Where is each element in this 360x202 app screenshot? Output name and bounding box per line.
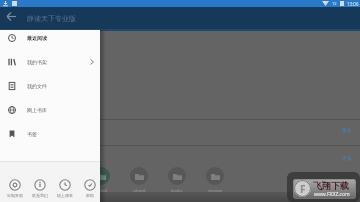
staticText: 更多: [342, 127, 352, 133]
staticText: 书签: [27, 131, 37, 137]
button[interactable]: sdcard: [130, 167, 148, 193]
staticText: storage: [208, 188, 223, 193]
staticText: 最近阅读: [27, 35, 47, 41]
button[interactable]: 定制界面: [4, 179, 26, 198]
staticText: www.FXXZ.com: [314, 191, 350, 198]
button[interactable]: 联系我们: [29, 179, 51, 198]
staticText: 网上书库: [27, 107, 47, 113]
staticText: sdcard: [133, 188, 146, 193]
staticText: books: [171, 188, 183, 193]
button[interactable]: 网上书库: [0, 98, 100, 122]
staticText: 13:06: [347, 1, 359, 7]
staticText: 帮助: [86, 193, 94, 198]
staticText: F: [300, 182, 306, 196]
staticText: 飞翔下载: [313, 180, 349, 191]
button[interactable]: 线上课堂: [54, 179, 76, 198]
staticText: 12: [332, 1, 337, 6]
staticText: 我的文件: [27, 83, 47, 89]
staticText: 静读天下专业版: [27, 14, 76, 23]
button[interactable]: 帮助: [79, 179, 101, 198]
button[interactable]: [0, 5, 22, 27]
button[interactable]: 更多: [338, 125, 356, 135]
staticText: 更多: [342, 155, 352, 161]
staticText: 线上课堂: [57, 193, 73, 198]
button[interactable]: 我的书架: [0, 50, 100, 74]
staticText: 定制界面: [7, 193, 23, 198]
button[interactable]: storage: [206, 167, 224, 193]
button[interactable]: 更多: [338, 153, 356, 163]
staticText: 联系我们: [32, 193, 48, 198]
button[interactable]: books: [168, 167, 186, 193]
button[interactable]: 最近阅读: [0, 26, 100, 50]
staticText: ncard: [96, 188, 107, 193]
button[interactable]: ncard: [92, 167, 110, 193]
staticText: 我的书架: [27, 59, 47, 65]
button[interactable]: 书签: [0, 122, 100, 146]
button[interactable]: 我的文件: [0, 74, 100, 98]
